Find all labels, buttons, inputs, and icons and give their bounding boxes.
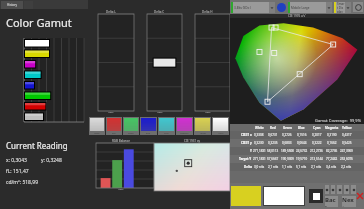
- staticText: 100W: [218, 132, 224, 135]
- button[interactable]: Tool 4: [344, 185, 349, 194]
- button[interactable]: Stop: [309, 189, 323, 203]
- staticText: 0,4317: [342, 133, 352, 137]
- staticText: 100W: [118, 188, 124, 191]
- staticText: 0,3235: [268, 141, 278, 145]
- button[interactable]: Red: [106, 117, 122, 135]
- staticText: Yellow: [200, 132, 206, 135]
- staticText: 0,6731: [268, 133, 278, 137]
- staticText: fL: 151,47: [6, 168, 29, 175]
- staticText: 253,6076: [340, 157, 353, 161]
- staticText: Back: [325, 196, 338, 207]
- staticText: 0,2726: [282, 133, 292, 137]
- staticText: Green: [128, 132, 134, 135]
- button[interactable]: Mobile Large: [288, 2, 332, 13]
- staticText: 2,2 nits: [341, 165, 352, 169]
- button[interactable]: Tool 1: [325, 185, 329, 194]
- button[interactable]: Cyan: [158, 117, 175, 135]
- button[interactable]: 100W: [212, 117, 229, 135]
- staticText: 212,2736: [310, 149, 323, 153]
- staticText: Cyan: [164, 132, 169, 135]
- staticText: Blue: [298, 126, 305, 130]
- staticText: Magenta: [325, 126, 339, 130]
- staticText: 0,6803: [282, 141, 292, 145]
- button[interactable]: Blue: [140, 117, 157, 135]
- button[interactable]: Next: [342, 196, 356, 207]
- staticText: Yellow: [342, 126, 352, 130]
- staticText: 3,4 nits: [326, 165, 337, 169]
- staticText: 0,1516: [297, 133, 307, 137]
- staticText: 3-Bits (SDo ): [234, 6, 251, 10]
- staticText: 2,1 nits: [311, 165, 322, 169]
- button[interactable]: Magenta: [176, 117, 193, 135]
- staticText: History: [7, 3, 18, 7]
- staticText: Delta L: [106, 10, 116, 14]
- staticText: 19,5710: [296, 157, 308, 161]
- staticText: Target Y: [239, 157, 252, 161]
- staticText: 82,2736: [326, 149, 338, 153]
- button[interactable]: Tool 2: [331, 185, 335, 194]
- staticText: 3,0 nits: [254, 165, 265, 169]
- staticText: Magenta: [180, 132, 189, 135]
- staticText: Cyan: [313, 126, 321, 130]
- staticText: White: [94, 132, 100, 135]
- staticText: 2,1 nits: [268, 165, 279, 169]
- button[interactable]: Settings: [353, 2, 363, 12]
- staticText: 24,6732: [296, 149, 308, 153]
- staticText: 0,5425: [342, 141, 352, 145]
- staticText: 271,1831: [253, 157, 266, 161]
- button[interactable]: White: [89, 117, 105, 135]
- staticText: Y: [250, 149, 252, 153]
- staticText: 0,3308: [254, 133, 264, 137]
- staticText: 100W: [157, 111, 163, 114]
- staticText: Smart Display Control: [337, 2, 345, 13]
- staticText: Green: [283, 126, 292, 130]
- staticText: CIE 1976 u'v': [288, 14, 306, 18]
- staticText: RGB Balance: [112, 139, 130, 143]
- staticText: White: [255, 126, 264, 130]
- staticText: 1,1 nits: [282, 165, 293, 169]
- staticText: Red: [270, 126, 276, 130]
- staticText: 57,6667: [267, 157, 279, 161]
- staticText: Mobile Large: [291, 6, 310, 10]
- staticText: y: 0,3248: [41, 157, 62, 164]
- staticText: 58,0113: [267, 149, 279, 153]
- button[interactable]: History: [1, 1, 23, 9]
- staticText: Delta C: [154, 10, 165, 14]
- staticText: 0,0644: [297, 141, 307, 145]
- button[interactable]: 3-Bits (SDo ): [231, 2, 275, 13]
- staticText: 77,2442: [326, 157, 338, 161]
- staticText: x: 0,3043: [6, 157, 27, 164]
- button[interactable]: Yellow: [194, 117, 211, 135]
- button[interactable]: Tool 3: [337, 185, 342, 194]
- staticText: CIE31 y: [241, 141, 252, 145]
- staticText: 213,5144: [310, 157, 323, 161]
- staticText: Red: [112, 132, 116, 135]
- button[interactable]: Green: [123, 117, 139, 135]
- button[interactable]: Back: [325, 196, 338, 207]
- staticText: 0,3222: [312, 141, 322, 145]
- staticText: Color Gamut: [6, 15, 72, 30]
- staticText: cd/m²: 518,99: [6, 179, 39, 186]
- staticText: 0,2017: [312, 133, 322, 137]
- staticText: 189,5508: [281, 149, 294, 153]
- staticText: 5,1 nits: [296, 165, 307, 169]
- staticText: 271,1831: [253, 149, 266, 153]
- staticText: Delta: [244, 165, 252, 169]
- staticText: CIE 1931 xy: [184, 139, 201, 143]
- staticText: 100W: [205, 111, 211, 114]
- staticText: 0,3230: [254, 141, 264, 145]
- staticText: Delta H: [202, 10, 213, 14]
- button[interactable]: Smart Display Control: [334, 2, 351, 13]
- staticText: 247,3969: [340, 149, 353, 153]
- staticText: Next: [342, 196, 356, 207]
- staticText: CIE31 x: [241, 133, 252, 137]
- staticText: Current Reading: [6, 140, 68, 151]
- staticText: Blue: [146, 132, 151, 135]
- button[interactable]: [263, 186, 305, 206]
- button[interactable]: Tool 5: [351, 185, 356, 194]
- button[interactable]: Measure: [277, 3, 286, 12]
- staticText: Gamut Coverage: 99,9%: [315, 118, 361, 123]
- staticText: 0,3190: [327, 133, 337, 137]
